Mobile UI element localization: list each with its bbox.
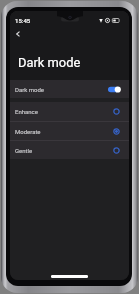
button[interactable]: Moderate	[10, 122, 129, 140]
button[interactable]: Back	[11, 27, 25, 41]
button[interactable]: Enhance	[10, 102, 129, 121]
staticText: Dark mode	[18, 55, 81, 70]
button[interactable]: Gentle	[10, 141, 129, 159]
staticText: Dark mode	[15, 86, 45, 93]
staticText: 15:45	[15, 17, 31, 24]
staticText: Enhance	[15, 108, 38, 115]
staticText: Moderate	[15, 128, 41, 135]
staticText: Gentle	[15, 147, 33, 154]
button[interactable]: Dark mode	[10, 80, 129, 98]
button[interactable]: Dark mode toggle	[108, 86, 121, 93]
